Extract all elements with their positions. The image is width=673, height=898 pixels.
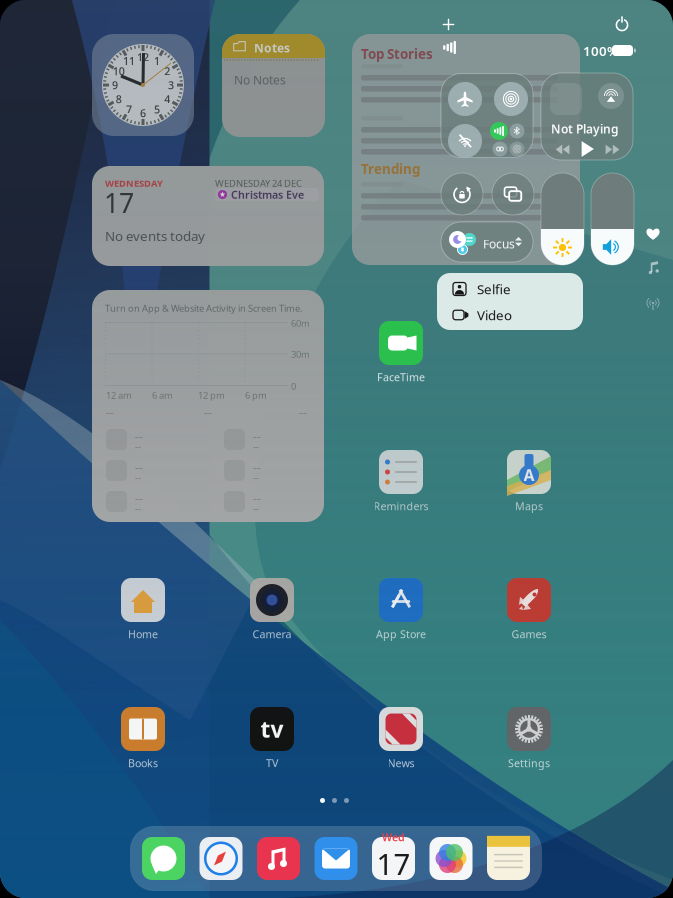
button[interactable]: Games: [507, 578, 551, 641]
button[interactable]: Books: [121, 707, 165, 770]
staticText: Maps: [515, 499, 543, 513]
button[interactable]: Music: [257, 837, 300, 880]
button[interactable]: Reminders: [379, 450, 423, 513]
button[interactable]: tv: [250, 707, 294, 770]
button[interactable]: App Store: [379, 578, 423, 641]
staticText: Games: [511, 627, 546, 641]
button[interactable]: Cellular Data: [490, 122, 508, 140]
staticText: Wed: [382, 830, 405, 844]
button[interactable]: Health: [646, 227, 660, 241]
button[interactable]: Wi-Fi: [448, 124, 482, 158]
staticText: 7: [126, 102, 132, 116]
button[interactable]: Personal Hotspot: [492, 141, 507, 156]
staticText: Settings: [508, 756, 550, 770]
staticText: --: [135, 459, 143, 475]
button[interactable]: Settings: [507, 707, 551, 770]
staticText: --: [253, 428, 261, 444]
staticText: WEDNESDAY: [105, 177, 163, 189]
staticText: 12 pm: [198, 389, 225, 401]
button[interactable]: Bluetooth: [509, 123, 524, 138]
staticText: --: [135, 440, 141, 452]
staticText: A: [523, 464, 534, 486]
button[interactable]: AirDrop: [494, 82, 528, 116]
staticText: --: [135, 471, 141, 483]
staticText: 30m: [291, 348, 310, 360]
staticText: 11: [123, 54, 135, 68]
button[interactable]: Photos: [429, 837, 472, 880]
button[interactable]: Selfie: [437, 275, 583, 303]
staticText: --: [135, 490, 143, 506]
staticText: --: [204, 404, 212, 420]
staticText: No Notes: [234, 72, 286, 88]
button[interactable]: Screen Mirroring: [492, 173, 534, 215]
staticText: Books: [128, 756, 158, 770]
staticText: Focus: [483, 236, 515, 252]
button[interactable]: Mail: [314, 837, 357, 880]
staticText: 12: [137, 50, 149, 64]
staticText: 2: [164, 64, 170, 78]
staticText: 0: [291, 380, 296, 392]
button[interactable]: Music Recognition: [646, 261, 660, 275]
button[interactable]: Messages: [142, 837, 185, 880]
staticText: Camera: [252, 627, 291, 641]
staticText: 12 am: [106, 389, 132, 401]
button[interactable]: FaceTime: [379, 321, 423, 384]
button[interactable]: News: [379, 707, 423, 770]
staticText: 6 am: [152, 389, 173, 401]
staticText: Not Playing: [551, 121, 619, 137]
staticText: --: [106, 404, 114, 420]
button[interactable]: Airplane Mode: [448, 82, 482, 116]
staticText: App Store: [376, 627, 426, 641]
staticText: 4: [164, 92, 170, 106]
button[interactable]: VPN: [509, 141, 524, 156]
staticText: No events today: [105, 227, 205, 245]
staticText: --: [253, 440, 259, 452]
staticText: 6 pm: [245, 389, 267, 401]
staticText: 3: [168, 78, 174, 92]
button[interactable]: Rewind: [555, 142, 570, 157]
staticText: Christmas Eve: [231, 187, 304, 202]
staticText: 9: [112, 78, 118, 92]
button[interactable]: Brightness: [541, 173, 584, 265]
staticText: News: [387, 756, 414, 770]
staticText: Reminders: [373, 499, 428, 513]
staticText: 17: [376, 844, 410, 883]
staticText: --: [253, 459, 261, 475]
button[interactable]: Safari: [199, 837, 242, 880]
button[interactable]: Volume: [591, 173, 634, 265]
staticText: --: [253, 490, 261, 506]
button[interactable]: Power: [614, 16, 630, 32]
button[interactable]: Calendar: [372, 837, 415, 880]
staticText: 1: [154, 54, 160, 68]
staticText: 6: [140, 106, 146, 120]
staticText: WEDNESDAY 24 DEC: [215, 177, 302, 189]
staticText: tv: [260, 714, 283, 744]
staticText: Notes: [254, 40, 290, 56]
staticText: 8: [116, 92, 122, 106]
button[interactable]: Fast Forward: [605, 142, 620, 157]
staticText: Trending: [361, 160, 420, 178]
staticText: 60m: [291, 317, 310, 329]
button[interactable]: Focus: [441, 222, 533, 262]
button[interactable]: A: [507, 450, 551, 513]
staticText: --: [253, 471, 259, 483]
button[interactable]: Home: [121, 578, 165, 641]
staticText: --: [253, 502, 259, 514]
button[interactable]: Video: [437, 301, 583, 329]
staticText: Top Stories: [361, 45, 433, 63]
staticText: Video: [477, 306, 512, 324]
button[interactable]: Screen Recording: [646, 297, 660, 311]
button[interactable]: Add Widget: [441, 17, 456, 32]
button[interactable]: Notes: [487, 837, 530, 880]
button[interactable]: Camera: [250, 578, 294, 641]
button[interactable]: Rotation Lock: [441, 173, 483, 215]
staticText: Selfie: [477, 280, 511, 298]
button[interactable]: AirPlay: [598, 83, 624, 109]
staticText: 17: [104, 185, 134, 220]
staticText: 100%: [583, 42, 619, 60]
button[interactable]: Play: [578, 140, 596, 158]
staticText: Home: [128, 627, 158, 641]
staticText: Turn on App & Website Activity in Screen…: [105, 302, 303, 314]
staticText: 10: [113, 64, 125, 78]
staticText: --: [299, 404, 307, 420]
